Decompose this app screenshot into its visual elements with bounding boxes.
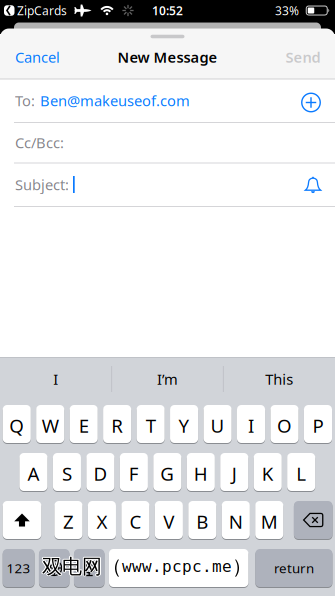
staticText: I’m: [157, 369, 178, 389]
button[interactable]: [109, 548, 248, 587]
staticText: 双电网（: [41, 554, 121, 579]
staticText: I: [53, 369, 58, 389]
staticText: X: [96, 509, 107, 534]
button[interactable]: P: [304, 404, 332, 443]
staticText: K: [262, 461, 274, 486]
staticText: New Message: [117, 47, 217, 67]
staticText: Send: [285, 47, 320, 67]
staticText: L: [296, 461, 306, 486]
button[interactable]: T: [137, 404, 165, 443]
button[interactable]: M: [255, 500, 283, 539]
staticText: M: [261, 509, 278, 534]
staticText: Q: [9, 413, 24, 438]
staticText: 双电网（: [42, 555, 122, 580]
button[interactable]: J: [220, 452, 248, 491]
staticText: Y: [179, 413, 190, 438]
button[interactable]: R: [103, 404, 131, 443]
button[interactable]: I: [237, 404, 265, 443]
staticText: 10:52: [152, 2, 183, 18]
staticText: return: [274, 559, 314, 577]
button[interactable]: Z: [54, 500, 82, 539]
button[interactable]: H: [187, 452, 215, 491]
button[interactable]: G: [153, 452, 181, 491]
staticText: 双电网（: [43, 554, 123, 578]
staticText: F: [129, 461, 139, 486]
staticText: ）: [232, 554, 252, 579]
staticText: Cancel: [15, 47, 60, 67]
button[interactable]: B: [188, 500, 216, 539]
button[interactable]: Delete: [294, 500, 332, 539]
button[interactable]: Send: [278, 43, 328, 71]
button[interactable]: N: [222, 500, 250, 539]
button[interactable]: O: [270, 404, 299, 443]
button[interactable]: return: [255, 548, 332, 587]
staticText: A: [27, 461, 39, 486]
staticText: T: [146, 413, 156, 438]
button[interactable]: A: [19, 452, 47, 491]
staticText: R: [111, 413, 123, 438]
staticText: J: [232, 461, 237, 486]
button[interactable]: K: [254, 452, 282, 491]
button[interactable]: To: [0, 79, 335, 121]
button[interactable]: Q: [3, 404, 31, 443]
button[interactable]: I’m: [112, 361, 222, 397]
button[interactable]: Cancel: [5, 43, 69, 71]
staticText: B: [196, 509, 208, 534]
staticText: W: [42, 413, 59, 438]
button[interactable]: S: [53, 452, 81, 491]
button[interactable]: W: [36, 404, 64, 443]
staticText: H: [194, 461, 208, 486]
button[interactable]: I: [1, 361, 111, 397]
button[interactable]: Next keyboard: [39, 548, 69, 587]
staticText: N: [229, 509, 243, 534]
staticText: P: [312, 413, 323, 438]
staticText: www.pcpc.me: [122, 558, 232, 576]
button[interactable]: L: [287, 452, 315, 491]
staticText: 双电网（: [43, 554, 123, 579]
staticText: Ben@makeuseof.com: [40, 91, 190, 110]
staticText: ）: [231, 554, 251, 578]
staticText: D: [93, 461, 107, 486]
staticText: www.pcpc.me: [122, 557, 232, 575]
staticText: V: [163, 509, 174, 534]
staticText: To:: [15, 91, 35, 110]
button[interactable]: Cc/Bcc: [0, 122, 335, 162]
staticText: 双电网（: [42, 554, 122, 579]
button[interactable]: D: [86, 452, 114, 491]
staticText: G: [160, 461, 174, 486]
button[interactable]: 123: [3, 548, 34, 587]
staticText: www.pcpc.me: [122, 558, 232, 576]
button[interactable]: Notify Me: [300, 172, 326, 198]
button[interactable]: X: [88, 500, 116, 539]
button[interactable]: Back to ZipCards: [4, 2, 67, 18]
staticText: Z: [63, 509, 74, 534]
staticText: ）: [231, 555, 251, 579]
staticText: Subject:: [15, 175, 69, 194]
staticText: www.pcpc.me: [122, 557, 232, 575]
staticText: www.pcpc.me: [122, 557, 232, 576]
button[interactable]: This: [224, 361, 334, 397]
staticText: ZipCards: [17, 2, 67, 18]
staticText: E: [79, 413, 89, 438]
button[interactable]: Add Contact: [296, 87, 326, 117]
button[interactable]: Y: [170, 404, 198, 443]
staticText: 双电网（: [43, 555, 123, 579]
button[interactable]: Subject: [0, 163, 335, 205]
button[interactable]: U: [203, 404, 232, 443]
button[interactable]: Shift: [3, 500, 41, 539]
button[interactable]: F: [120, 452, 148, 491]
staticText: ）: [233, 554, 253, 578]
staticText: S: [62, 461, 72, 486]
staticText: ）: [232, 553, 252, 578]
staticText: ）: [231, 554, 251, 579]
staticText: I: [248, 413, 254, 438]
staticText: 双电网（: [41, 554, 121, 578]
staticText: ）: [233, 555, 253, 579]
button[interactable]: V: [155, 500, 183, 539]
button[interactable]: C: [121, 500, 149, 539]
button[interactable]: E: [70, 404, 98, 443]
staticText: ）: [233, 554, 253, 579]
staticText: Cc/Bcc:: [15, 133, 64, 152]
staticText: 双电网（: [42, 553, 122, 578]
button[interactable]: Dictate: [74, 548, 104, 587]
